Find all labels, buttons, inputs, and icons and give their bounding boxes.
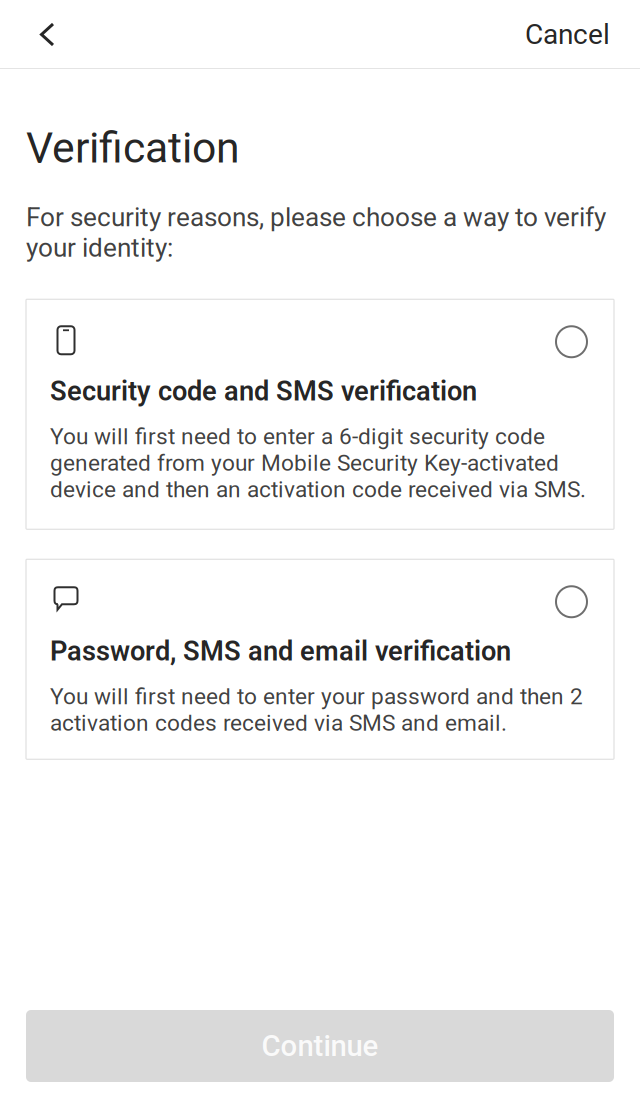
staticText: Password, SMS and email verification	[50, 635, 511, 667]
staticText: You will first need to enter a 6-digit s…	[50, 423, 586, 503]
button[interactable]: Security code and SMS verification	[26, 299, 614, 529]
staticText: You will first need to enter your passwo…	[50, 683, 583, 736]
button[interactable]: Back	[0, 0, 80, 69]
button[interactable]: Password, SMS and email verification	[26, 559, 614, 759]
button[interactable]: Cancel	[501, 0, 640, 69]
staticText: For security reasons, please choose a wa…	[26, 202, 606, 263]
staticText: Continue	[261, 1029, 378, 1063]
button[interactable]: Continue	[26, 1010, 614, 1082]
staticText: Security code and SMS verification	[50, 375, 477, 407]
staticText: Verification	[26, 123, 240, 173]
staticText: Cancel	[525, 18, 610, 51]
